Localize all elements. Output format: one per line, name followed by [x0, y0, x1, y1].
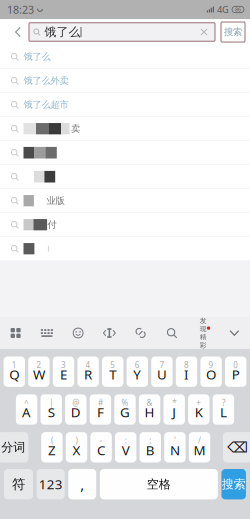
- staticText: 饿了么: [45, 25, 81, 39]
- staticText: 8: [184, 359, 189, 370]
- staticText: -: [100, 435, 103, 446]
- button[interactable]: 饿了么: [0, 45, 250, 69]
- staticText: 5: [110, 359, 115, 370]
- button[interactable]: [0, 165, 250, 189]
- staticText: ': [174, 435, 176, 446]
- button[interactable]: 饿了么超市: [0, 93, 250, 117]
- staticText: 18:23: [7, 2, 34, 17]
- staticText: 符: [12, 476, 25, 492]
- button[interactable]: 2: [28, 356, 50, 387]
- button[interactable]: 0: [225, 356, 246, 387]
- button[interactable]: Attachment: [125, 317, 156, 349]
- staticText: 空格: [147, 477, 171, 491]
- button[interactable]: 8: [176, 356, 197, 387]
- button[interactable]: (: [41, 432, 63, 462]
- staticText: 1: [12, 359, 17, 370]
- button[interactable]: Search: [156, 317, 187, 349]
- staticText: 7: [159, 359, 164, 370]
- button[interactable]: ⌫: [223, 432, 250, 462]
- staticText: 搜索: [224, 26, 242, 38]
- button[interactable]: Clear search text: [196, 24, 212, 40]
- staticText: 123: [39, 475, 63, 493]
- button[interactable]: Emoji: [62, 317, 94, 349]
- button[interactable]: +: [188, 394, 209, 425]
- button[interactable]: *: [163, 394, 185, 425]
- staticText: 分词: [1, 440, 25, 455]
- staticText: K: [195, 403, 203, 421]
- staticText: 精彩: [200, 333, 207, 349]
- button[interactable]: ,: [68, 469, 96, 499]
- staticText: 86: [235, 6, 241, 13]
- staticText: |: [49, 397, 53, 408]
- button[interactable]: &: [139, 394, 160, 425]
- staticText: &: [147, 397, 153, 408]
- button[interactable]: 1: [4, 356, 25, 387]
- button[interactable]: /: [189, 432, 210, 462]
- staticText: V: [122, 441, 130, 459]
- staticText: 业版: [46, 195, 64, 206]
- button[interactable]: 3: [53, 356, 74, 387]
- staticText: R: [84, 365, 92, 383]
- staticText: ?: [222, 397, 225, 408]
- button[interactable]: 分词: [0, 432, 28, 462]
- button[interactable]: #: [90, 394, 111, 425]
- button[interactable]: Back: [7, 21, 29, 43]
- button[interactable]: 业版: [0, 189, 250, 213]
- button[interactable]: -: [90, 432, 112, 462]
- staticText: *: [172, 397, 176, 408]
- button[interactable]: |: [40, 394, 62, 425]
- staticText: W: [33, 365, 45, 383]
- staticText: %: [121, 397, 128, 408]
- button[interactable]: @: [65, 394, 86, 425]
- button[interactable]: ^: [16, 394, 37, 425]
- button[interactable]: 6: [127, 356, 148, 387]
- button[interactable]: 符: [4, 469, 33, 499]
- button[interactable]: ): [66, 432, 87, 462]
- staticText: 6: [135, 359, 140, 370]
- staticText: L: [220, 403, 227, 421]
- staticText: ⌫: [227, 439, 248, 456]
- staticText: A: [22, 403, 31, 421]
- button[interactable]: Keyboard: [31, 317, 62, 349]
- staticText: 搜索: [222, 477, 246, 491]
- button[interactable]: 9: [200, 356, 222, 387]
- button[interactable]: 7: [151, 356, 173, 387]
- button[interactable]: Keyboard layouts: [0, 317, 31, 349]
- staticText: C: [97, 441, 105, 459]
- button[interactable]: 付: [0, 213, 250, 237]
- button[interactable]: %: [114, 394, 136, 425]
- button[interactable]: :: [115, 432, 136, 462]
- button[interactable]: ;: [140, 432, 161, 462]
- staticText: N: [170, 441, 180, 459]
- button[interactable]: 卖: [0, 117, 250, 141]
- staticText: X: [72, 441, 80, 459]
- staticText: 2: [36, 359, 41, 370]
- button[interactable]: [0, 141, 250, 165]
- staticText: #: [98, 397, 103, 408]
- button[interactable]: 搜索: [221, 469, 246, 499]
- button[interactable]: Hide keyboard: [219, 317, 250, 349]
- staticText: 饿了么超市: [23, 99, 68, 110]
- staticText: /: [198, 435, 201, 446]
- button[interactable]: 搜索: [221, 22, 245, 42]
- button[interactable]: Highlights: [187, 317, 219, 349]
- staticText: 饿了么: [23, 51, 50, 62]
- staticText: O: [206, 365, 216, 383]
- staticText: ;: [149, 435, 151, 446]
- staticText: J: [172, 403, 176, 421]
- staticText: S: [48, 403, 55, 421]
- button[interactable]: ?: [213, 394, 234, 425]
- button[interactable]: [0, 237, 250, 261]
- button[interactable]: 5: [102, 356, 123, 387]
- button[interactable]: ': [164, 432, 186, 462]
- staticText: 4G: [217, 3, 229, 16]
- button[interactable]: 饿了么外卖: [0, 69, 250, 93]
- button[interactable]: 空格: [100, 469, 218, 499]
- staticText: P: [232, 365, 240, 383]
- button[interactable]: 123: [37, 469, 65, 499]
- staticText: 饿了么外卖: [23, 75, 68, 86]
- staticText: Y: [133, 365, 141, 383]
- staticText: @: [72, 397, 79, 408]
- button[interactable]: 4: [77, 356, 99, 387]
- button[interactable]: Symbols: [94, 317, 125, 349]
